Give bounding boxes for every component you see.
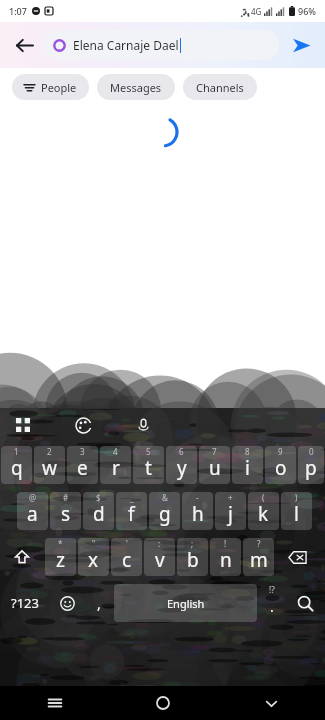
staticText: . xyxy=(270,597,274,616)
staticText: 9 xyxy=(278,446,283,457)
staticText: x xyxy=(88,547,99,573)
button[interactable]: 6 xyxy=(166,446,197,484)
button[interactable]: 2 xyxy=(34,446,65,484)
button[interactable]: !? xyxy=(259,584,285,622)
button[interactable]: 3 xyxy=(67,446,98,484)
staticText: 4G xyxy=(251,6,262,17)
other: Backspace xyxy=(288,548,307,567)
staticText: - xyxy=(196,492,199,503)
staticText: 8 xyxy=(245,446,250,457)
button[interactable]: , xyxy=(86,584,112,622)
staticText: ) xyxy=(295,492,298,503)
staticText: * xyxy=(58,538,63,549)
staticText: e xyxy=(77,455,88,481)
staticText: m xyxy=(250,547,268,573)
button[interactable]: ! xyxy=(210,538,241,576)
staticText: 1 xyxy=(14,446,19,457)
button[interactable]: 4 xyxy=(100,446,131,484)
staticText: Messages xyxy=(110,80,162,95)
button[interactable]: 5 xyxy=(133,446,164,484)
staticText: 6 xyxy=(179,446,184,457)
staticText: + xyxy=(228,492,233,503)
other: Emoji xyxy=(60,596,75,611)
staticText: z xyxy=(56,547,65,573)
staticText: _ xyxy=(130,492,134,503)
staticText: 5 xyxy=(146,446,151,457)
staticText: q xyxy=(11,455,23,481)
staticText: s xyxy=(61,501,71,527)
button[interactable]: Shift xyxy=(1,538,43,576)
staticText: @ xyxy=(29,492,37,503)
staticText: & xyxy=(162,492,168,503)
button[interactable]: 1 xyxy=(1,446,32,484)
staticText: 0 xyxy=(309,446,314,457)
button[interactable]: & xyxy=(149,492,180,530)
staticText: 7 xyxy=(212,446,217,457)
button[interactable]: English xyxy=(114,584,257,622)
button[interactable]: Voice input xyxy=(130,412,156,438)
staticText: c xyxy=(122,547,132,573)
button[interactable]: _ xyxy=(116,492,147,530)
staticText: $ xyxy=(96,492,101,503)
button[interactable]: Back xyxy=(8,29,40,61)
button[interactable]: Apps xyxy=(10,412,36,438)
button[interactable]: " xyxy=(78,538,109,576)
staticText: t xyxy=(145,455,152,481)
button[interactable]: ' xyxy=(111,538,142,576)
button[interactable]: Back xyxy=(217,686,325,720)
button[interactable]: $ xyxy=(83,492,114,530)
staticText: : xyxy=(158,538,161,549)
staticText: Channels xyxy=(196,80,244,95)
button[interactable]: 8 xyxy=(232,446,263,484)
button[interactable]: Emoji xyxy=(50,584,84,622)
button[interactable]: ?123 xyxy=(1,584,48,622)
staticText: 96% xyxy=(298,5,316,17)
staticText: ; xyxy=(191,538,194,549)
staticText: y xyxy=(177,455,187,481)
button[interactable]: ) xyxy=(281,492,312,530)
staticText: 3 xyxy=(80,446,85,457)
button[interactable]: 0 xyxy=(298,446,324,484)
button[interactable]: ( xyxy=(248,492,279,530)
staticText: ? xyxy=(257,538,261,549)
button[interactable]: 7 xyxy=(199,446,230,484)
button[interactable]: Messages xyxy=(97,74,175,100)
staticText: r xyxy=(112,455,120,481)
button[interactable]: Elena Carnaje Dael xyxy=(44,30,279,60)
staticText: u xyxy=(209,455,221,481)
staticText: Elena Carnaje Dael xyxy=(73,37,179,53)
button[interactable]: Recents xyxy=(0,686,109,720)
staticText: i xyxy=(245,455,250,481)
staticText: !? xyxy=(269,584,275,595)
staticText: l xyxy=(294,501,299,527)
staticText: v xyxy=(155,547,165,573)
button[interactable]: @ xyxy=(17,492,48,530)
button[interactable]: * xyxy=(45,538,76,576)
button[interactable]: ; xyxy=(177,538,208,576)
button[interactable]: Home xyxy=(109,686,217,720)
staticText: ! xyxy=(224,538,227,549)
staticText: b xyxy=(187,547,199,573)
staticText: d xyxy=(93,501,105,527)
button[interactable]: Theme xyxy=(70,412,96,438)
staticText: English xyxy=(167,596,205,611)
staticText: People xyxy=(41,80,77,95)
staticText: , xyxy=(97,594,101,613)
staticText: g xyxy=(159,501,171,527)
button[interactable]: ? xyxy=(243,538,274,576)
staticText: n xyxy=(220,547,232,573)
staticText: 4 xyxy=(113,446,118,457)
staticText: f xyxy=(128,501,135,527)
button[interactable]: : xyxy=(144,538,175,576)
button[interactable]: People xyxy=(12,74,89,100)
staticText: ( xyxy=(262,492,265,503)
button[interactable]: Channels xyxy=(183,74,257,100)
button[interactable]: # xyxy=(50,492,81,530)
button[interactable]: 9 xyxy=(265,446,296,484)
staticText: " xyxy=(92,538,96,549)
button[interactable]: Search xyxy=(287,584,324,622)
button[interactable]: Send xyxy=(285,29,317,61)
button[interactable]: - xyxy=(182,492,213,530)
button[interactable]: + xyxy=(215,492,246,530)
button[interactable]: Backspace xyxy=(276,538,318,576)
